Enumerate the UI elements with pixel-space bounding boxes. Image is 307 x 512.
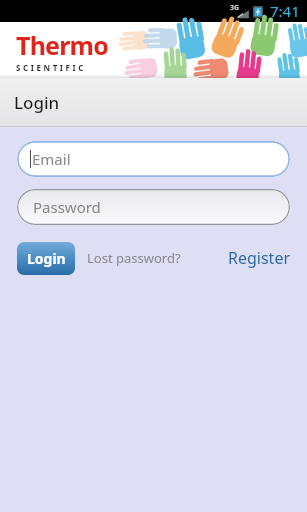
staticText: Register — [228, 247, 291, 269]
staticText: Email — [32, 149, 71, 169]
staticText: Lost password? — [87, 249, 181, 267]
staticText: 7:41 — [270, 1, 300, 21]
button[interactable]: Login — [17, 242, 75, 275]
staticText: SCIENTIFIC — [16, 62, 87, 73]
staticText: Login — [27, 249, 66, 268]
button[interactable]: Password — [17, 189, 290, 225]
button[interactable]: Register — [228, 241, 291, 275]
staticText: 3G — [230, 3, 240, 13]
staticText: Login — [14, 91, 60, 114]
staticText: Thermo — [16, 28, 108, 62]
button[interactable]: Email — [17, 141, 290, 177]
staticText: Password — [33, 197, 101, 217]
button[interactable]: Lost password? — [87, 243, 181, 273]
